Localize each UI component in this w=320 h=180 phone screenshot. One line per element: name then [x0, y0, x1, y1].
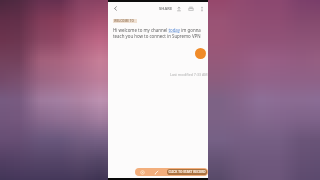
button[interactable]: Back — [112, 5, 119, 12]
staticText: CLICK TO START RECORD — [168, 170, 206, 174]
button[interactable]: More options — [197, 4, 206, 13]
button[interactable]: Record — [195, 48, 206, 59]
button[interactable]: Camera — [139, 169, 146, 176]
staticText: WELCOME TO MY — [114, 19, 138, 23]
button[interactable]: Print — [186, 4, 195, 13]
staticText: SHARE — [159, 6, 173, 11]
staticText: teach you how to connect in Supremo VPN — [113, 33, 201, 39]
button[interactable]: Upload — [174, 4, 183, 13]
staticText: Last modified 7:33 AM — [170, 72, 208, 77]
staticText: Hi welcome to my channel today im gonna — [113, 27, 201, 33]
button[interactable]: CLICK TO START RECORD — [167, 169, 207, 175]
button[interactable]: SHARE — [158, 3, 174, 14]
button[interactable]: Pencil — [153, 169, 160, 176]
